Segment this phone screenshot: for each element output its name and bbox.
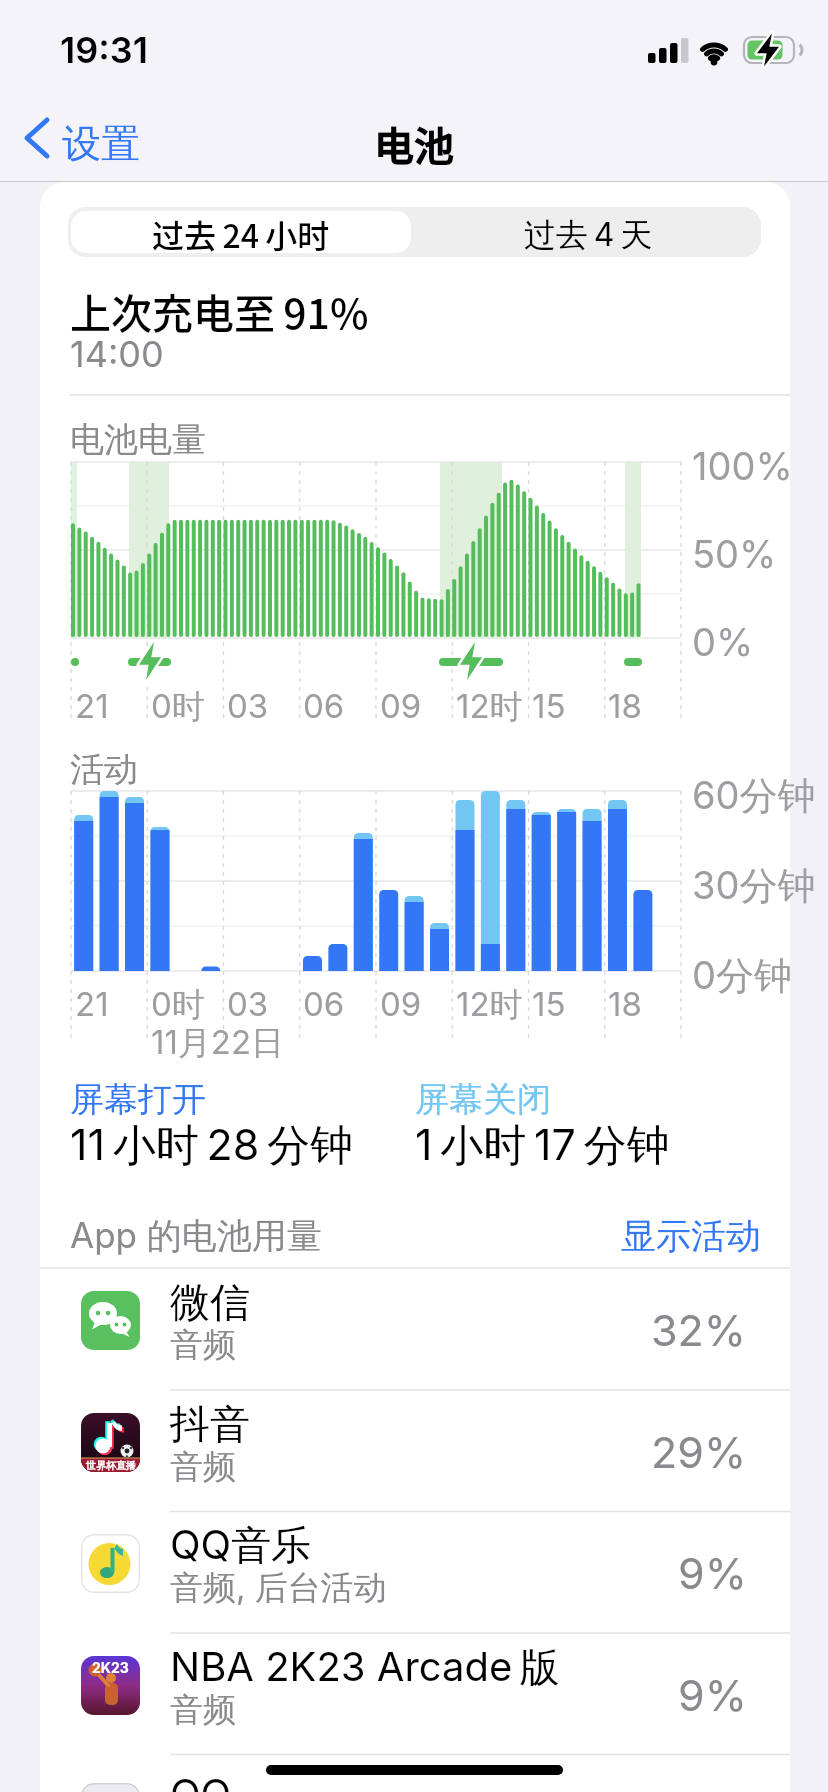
button[interactable] xyxy=(40,1633,790,1754)
staticText: 06 xyxy=(303,984,345,1024)
staticText: QQ xyxy=(170,1769,232,1792)
staticText: 30分钟 xyxy=(692,862,816,910)
staticText: 2K23 xyxy=(92,1659,129,1676)
staticText: 电池 xyxy=(374,115,454,173)
staticText: 19:31 xyxy=(60,28,148,72)
staticText: 15 xyxy=(532,686,566,726)
staticText: 9% xyxy=(678,1547,747,1599)
button[interactable] xyxy=(20,112,150,168)
staticText: 03 xyxy=(227,686,269,726)
button[interactable] xyxy=(40,1760,790,1792)
staticText: 09 xyxy=(380,686,422,726)
staticText: 18 xyxy=(608,686,642,726)
staticText: 21 xyxy=(75,984,109,1024)
staticText: 音频 xyxy=(170,1689,236,1731)
staticText: 音频 xyxy=(170,1324,236,1366)
staticText: 上次充电至 91% xyxy=(70,281,369,340)
button[interactable] xyxy=(610,1205,770,1261)
staticText: 过去 24 小时 xyxy=(152,211,330,257)
staticText: 12时 xyxy=(456,984,523,1026)
staticText: QQ音乐 xyxy=(170,1520,312,1571)
staticText: 100% xyxy=(692,443,793,489)
staticText: 29% xyxy=(651,1426,747,1478)
staticText: 0时 xyxy=(151,686,205,728)
staticText: NBA 2K23 Arcade 版 xyxy=(170,1642,560,1693)
staticText: 活动 xyxy=(70,748,138,791)
staticText: 0% xyxy=(692,619,754,665)
staticText: 抖音 xyxy=(170,1399,250,1449)
button[interactable] xyxy=(40,1390,790,1511)
staticText: 显示活动 xyxy=(621,1214,761,1258)
staticText: 世界杯直播 xyxy=(86,1459,136,1472)
staticText: 15 xyxy=(532,984,566,1024)
staticText: 1 小时 17 分钟 xyxy=(415,1118,670,1172)
staticText: 屏幕关闭 xyxy=(415,1078,551,1121)
staticText: 9% xyxy=(678,1669,747,1721)
staticText: 32% xyxy=(651,1304,747,1356)
staticText: App 的电池用量 xyxy=(70,1214,322,1258)
staticText: 屏幕打开 xyxy=(70,1078,206,1121)
staticText: 0分钟 xyxy=(692,952,792,1000)
staticText: 音频, 后台活动 xyxy=(170,1567,387,1609)
staticText: 11 小时 28 分钟 xyxy=(70,1118,354,1172)
button[interactable] xyxy=(40,1511,790,1632)
button[interactable] xyxy=(40,1268,790,1389)
staticText: 电池电量 xyxy=(70,418,206,461)
staticText: 60分钟 xyxy=(692,772,816,820)
staticText: 21 xyxy=(75,686,109,726)
staticText: 11月22日 xyxy=(151,1022,285,1064)
staticText: 06 xyxy=(303,686,345,726)
staticText: 18 xyxy=(608,984,642,1024)
staticText: 14:00 xyxy=(70,332,164,376)
staticText: 音频 xyxy=(170,1446,236,1488)
staticText: 微信 xyxy=(170,1277,250,1327)
staticText: 12时 xyxy=(456,686,523,728)
staticText: 03 xyxy=(227,984,269,1024)
staticText: 09 xyxy=(380,984,422,1024)
staticText: 0时 xyxy=(151,984,205,1026)
button[interactable] xyxy=(414,207,761,257)
staticText: 设置 xyxy=(62,119,140,168)
button[interactable] xyxy=(71,211,411,253)
staticText: 过去 4 天 xyxy=(524,215,653,256)
staticText: 50% xyxy=(692,531,777,577)
